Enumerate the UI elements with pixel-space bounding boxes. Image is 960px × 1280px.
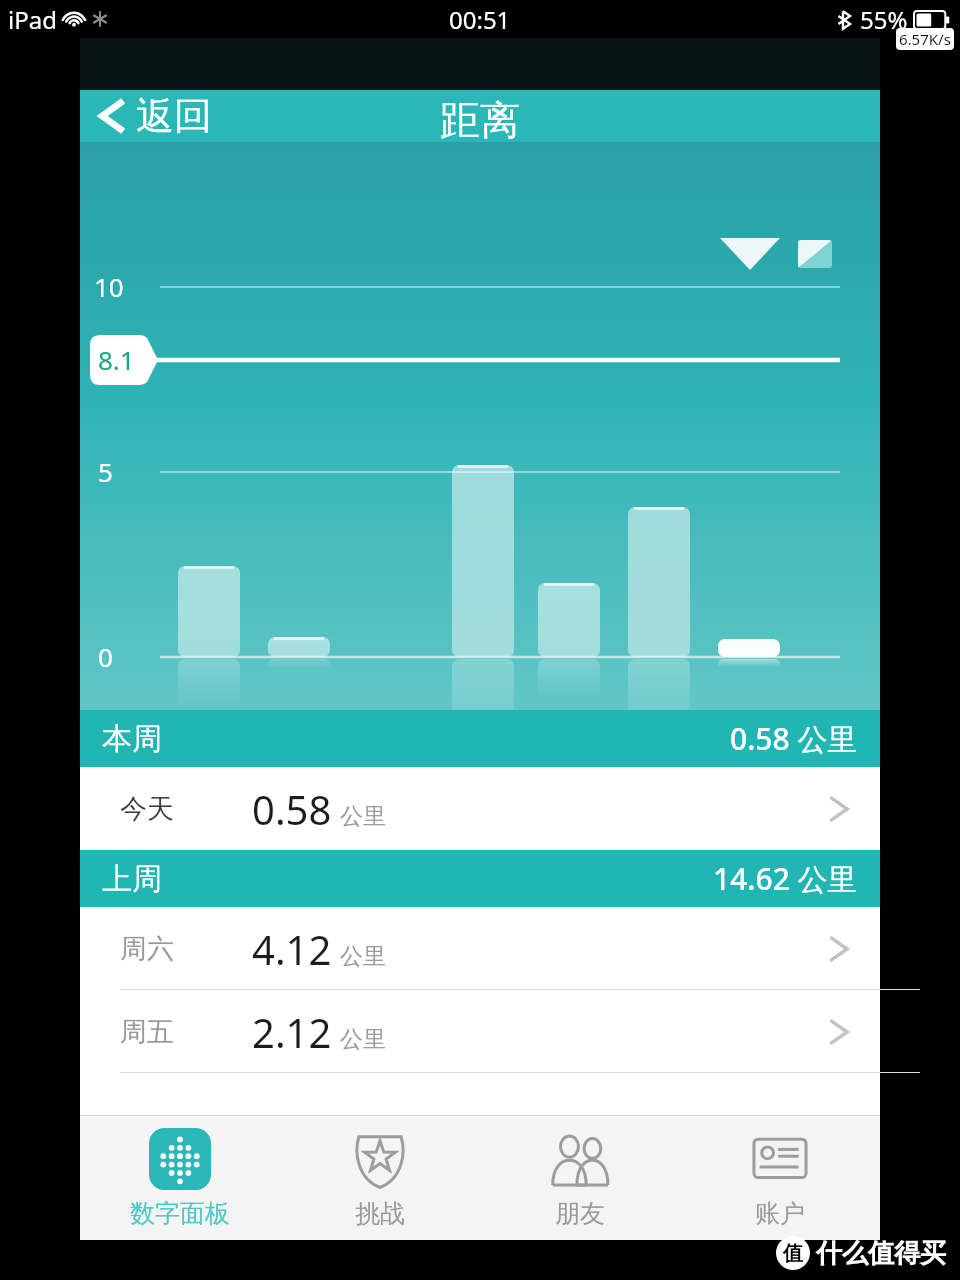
- staticText: 4.12: [252, 922, 332, 976]
- staticText: 公里: [340, 942, 386, 971]
- staticText: 10: [94, 269, 124, 304]
- staticText: 挑战: [355, 1198, 405, 1229]
- button[interactable]: 返回: [80, 90, 224, 142]
- staticText: 6.57K/s: [899, 29, 951, 49]
- staticText: 55%: [860, 3, 908, 36]
- staticText: 公里: [340, 1025, 386, 1054]
- staticText: 朋友: [555, 1198, 605, 1229]
- staticText: 0.58: [252, 782, 332, 836]
- button[interactable]: 本周: [80, 710, 880, 767]
- staticText: 什么值得买: [816, 1237, 946, 1270]
- staticText: 值: [783, 1241, 803, 1266]
- staticText: 上周: [102, 860, 162, 898]
- button[interactable]: 周六: [80, 907, 880, 990]
- button[interactable]: 朋友: [480, 1116, 680, 1240]
- staticText: 5: [98, 454, 113, 489]
- button[interactable]: 周五: [80, 990, 880, 1073]
- staticText: 本周: [102, 720, 162, 758]
- button[interactable]: 上周: [80, 850, 880, 907]
- staticText: 账户: [755, 1198, 805, 1229]
- button[interactable]: 挑战: [280, 1116, 480, 1240]
- staticText: 8.1: [98, 342, 135, 377]
- staticText: 返回: [136, 92, 212, 140]
- staticText: 周五: [120, 1015, 174, 1049]
- staticText: 公里: [340, 802, 386, 831]
- staticText: 数字面板: [130, 1198, 230, 1229]
- staticText: 周六: [120, 932, 174, 966]
- button[interactable]: 数字面板: [80, 1116, 280, 1240]
- staticText: 14.62 公里: [713, 858, 858, 899]
- staticText: 2.12: [252, 1005, 332, 1059]
- staticText: 0: [98, 639, 113, 674]
- staticText: 0.58 公里: [730, 718, 858, 759]
- staticText: 00:51: [449, 3, 511, 36]
- staticText: 今天: [120, 792, 174, 826]
- staticText: 距离: [440, 95, 520, 145]
- button[interactable]: 账户: [680, 1116, 880, 1240]
- button[interactable]: 今天: [80, 767, 880, 850]
- staticText: iPad: [8, 3, 57, 36]
